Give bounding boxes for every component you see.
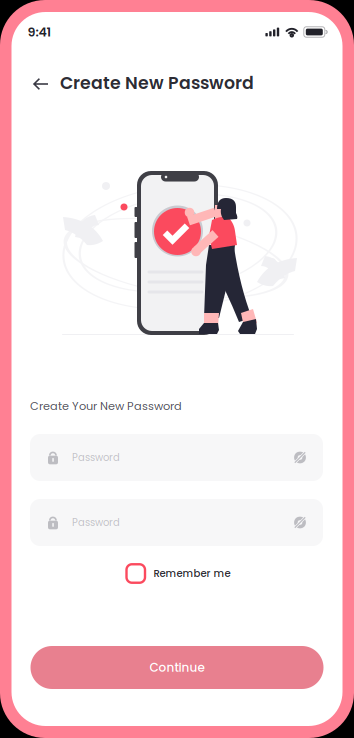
staticText: Continue [149,659,204,676]
staticText: Password [72,515,120,529]
staticText: Create New Password [60,71,254,95]
staticText: Remember me [153,566,230,581]
button[interactable]: Back [24,67,58,101]
staticText: Password [72,450,120,464]
staticText: 9:41 [27,23,51,41]
button[interactable]: Remember me [121,559,235,588]
button[interactable]: Continue [30,646,323,689]
staticText: Create Your New Password [30,398,182,414]
